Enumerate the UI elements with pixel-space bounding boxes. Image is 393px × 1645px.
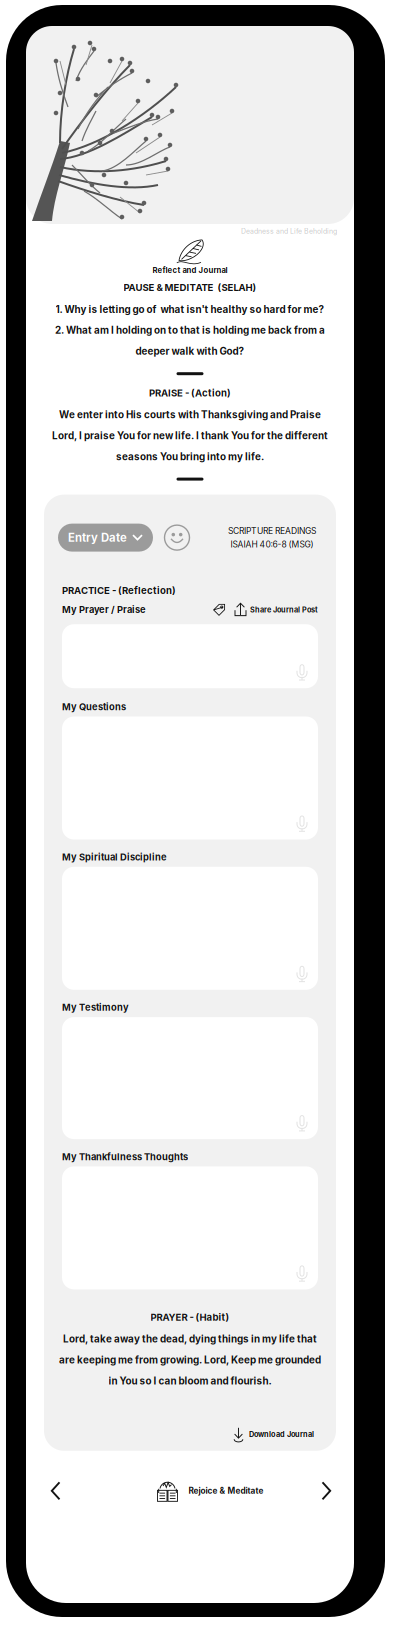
staticText: PRAYER - (Habit) bbox=[150, 1311, 229, 1323]
staticText: ISAIAH 40:6-8 (MSG) bbox=[230, 539, 313, 549]
staticText: deeper walk with God? bbox=[135, 345, 244, 357]
staticText: SCRIPTURE READINGS bbox=[228, 526, 316, 536]
staticText: Lord, I praise You for new life. I thank… bbox=[52, 430, 328, 442]
staticText: Entry Date bbox=[68, 531, 127, 544]
button[interactable]: Previous bbox=[50, 1481, 61, 1501]
staticText: Download Journal bbox=[249, 1430, 314, 1439]
staticText: PRACTICE - (Reflection) bbox=[62, 585, 176, 596]
button[interactable]: Mood bbox=[164, 525, 190, 551]
button[interactable]: Tag bbox=[212, 603, 226, 617]
staticText: My Thankfulness Thoughts bbox=[62, 1151, 188, 1162]
button[interactable]: Share Journal Post bbox=[234, 602, 318, 617]
button[interactable]: Download Journal bbox=[232, 1427, 314, 1442]
staticText: My Prayer / Praise bbox=[62, 604, 146, 615]
button[interactable]: Next bbox=[321, 1481, 332, 1501]
staticText: Rejoice & Meditate bbox=[188, 1486, 263, 1496]
staticText: My Spiritual Discipline bbox=[62, 851, 167, 863]
button[interactable]: Rejoice & Meditate bbox=[154, 1479, 263, 1503]
staticText: PRAISE - (Action) bbox=[149, 387, 231, 399]
staticText: Reflect and Journal bbox=[152, 265, 227, 275]
staticText: 1. Why is letting go of what isn't healt… bbox=[55, 303, 324, 315]
staticText: We enter into His courts with Thanksgivi… bbox=[59, 409, 321, 421]
staticText: Deadness and Life Beholding bbox=[241, 227, 337, 235]
staticText: seasons You bring into my life. bbox=[116, 451, 264, 463]
staticText: Share Journal Post bbox=[250, 605, 318, 614]
button[interactable]: Entry Date bbox=[58, 524, 153, 552]
staticText: are keeping me from growing. Lord, Keep … bbox=[59, 1354, 321, 1366]
staticText: in You so I can bloom and flourish. bbox=[108, 1375, 271, 1387]
staticText: My Questions bbox=[62, 701, 126, 712]
staticText: PAUSE & MEDITATE (SELAH) bbox=[123, 282, 256, 293]
staticText: My Testimony bbox=[62, 1002, 129, 1013]
staticText: 2. What am I holding on to that is holdi… bbox=[55, 324, 325, 336]
staticText: Lord, take away the dead, dying things i… bbox=[63, 1333, 317, 1345]
